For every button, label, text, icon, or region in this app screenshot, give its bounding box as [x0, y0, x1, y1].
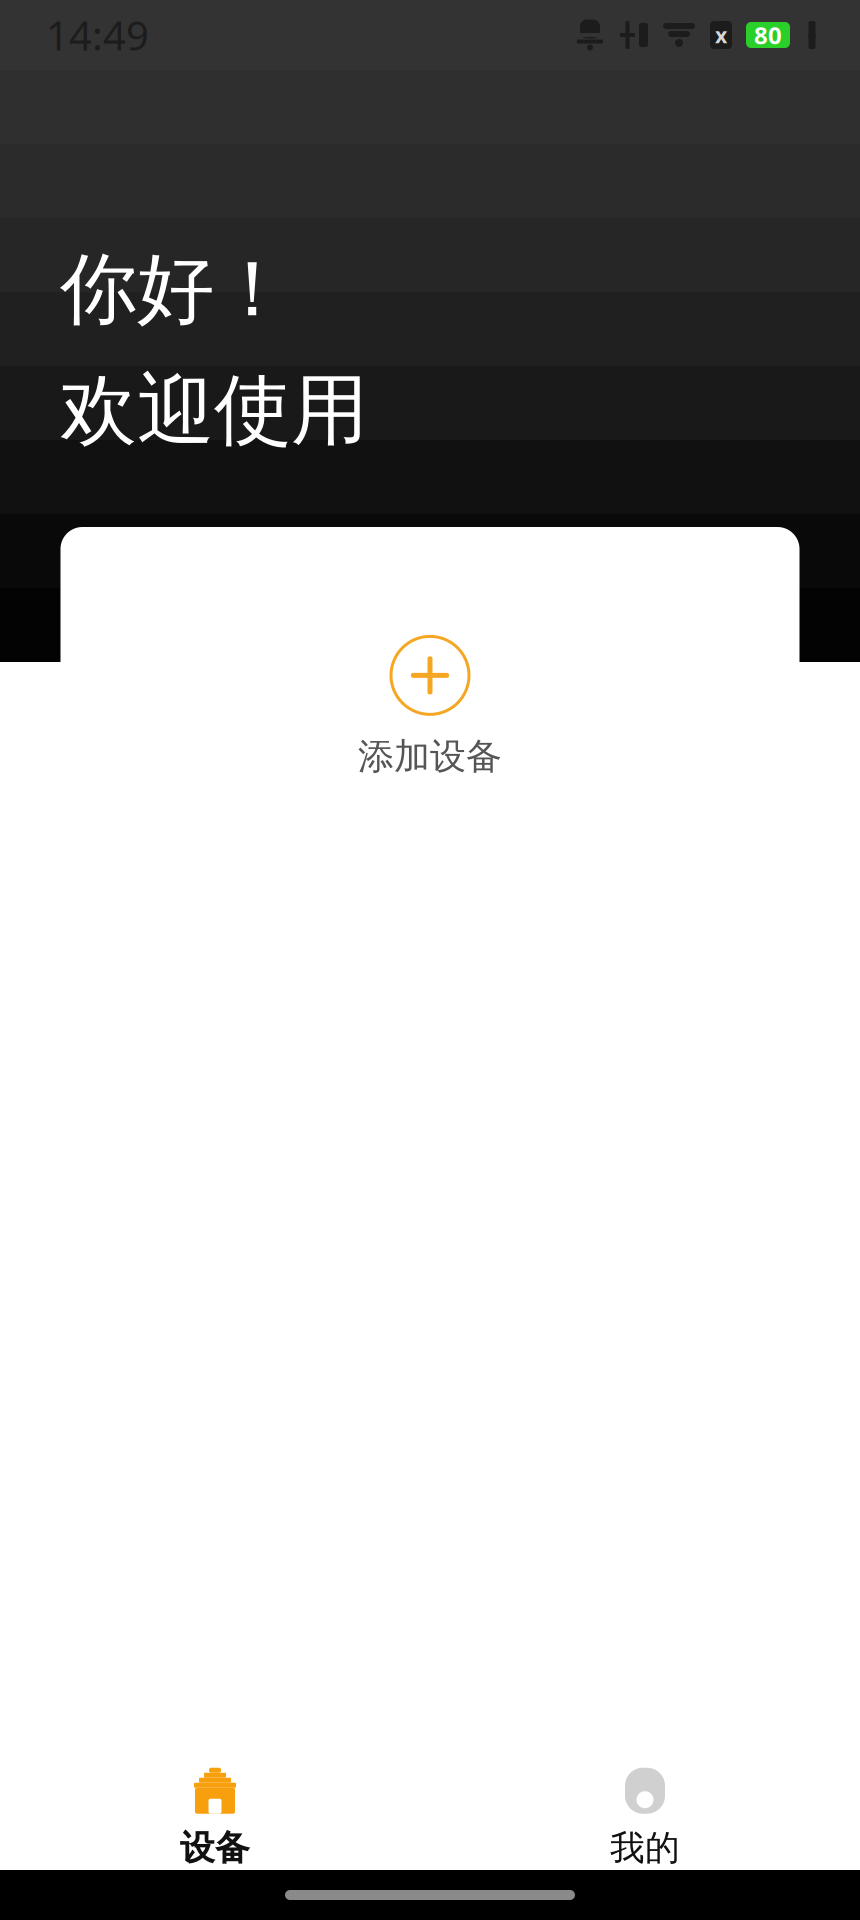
- button[interactable]: 添加设备: [60, 527, 799, 888]
- staticText: 我的: [610, 1827, 680, 1869]
- staticText: x: [715, 21, 727, 49]
- button[interactable]: 设备: [0, 1766, 430, 1870]
- button[interactable]: 我的: [430, 1766, 860, 1870]
- staticText: 添加设备: [358, 734, 502, 779]
- staticText: 设备: [180, 1827, 250, 1869]
- staticText: 14:49: [46, 8, 149, 61]
- staticText: 欢迎使用: [60, 363, 368, 458]
- staticText: 80: [754, 19, 782, 51]
- staticText: 你好！: [60, 242, 291, 337]
